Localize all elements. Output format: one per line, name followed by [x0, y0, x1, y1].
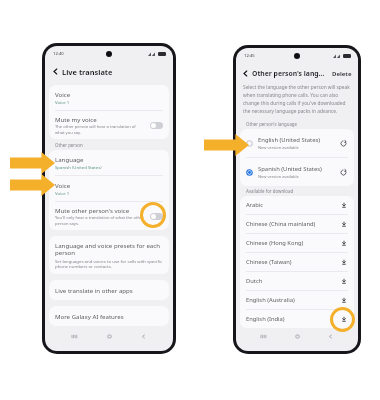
button[interactable]: Recents — [258, 331, 269, 342]
staticText: Spanish (United States) — [55, 164, 102, 170]
staticText: Spanish (United States) — [258, 165, 322, 173]
button[interactable]: Navigate up — [241, 69, 250, 78]
staticText: Dutch — [246, 277, 340, 285]
staticText: Other person — [55, 142, 83, 148]
button[interactable]: Chinese (Taiwan) — [240, 253, 354, 271]
staticText: Other person's lang… — [252, 69, 325, 78]
staticText: New version available — [258, 174, 299, 179]
button[interactable]: Dutch — [240, 272, 354, 290]
button[interactable]: Navigate up — [51, 67, 60, 76]
staticText: The other person will hear a translation… — [55, 124, 144, 135]
other: Update — [339, 168, 348, 177]
staticText: New version available — [258, 145, 299, 150]
other: Download — [340, 220, 348, 228]
button[interactable]: Back — [138, 331, 149, 342]
staticText: Available for download — [246, 188, 294, 194]
staticText: English (Australia) — [246, 296, 340, 304]
staticText: Language — [55, 155, 84, 163]
button[interactable]: Language — [49, 150, 169, 175]
other: Update — [339, 139, 348, 148]
staticText: English (United States) — [258, 136, 321, 144]
button[interactable]: English (India) — [240, 310, 354, 328]
other: Download — [340, 296, 348, 304]
button[interactable]: Mute my voice — [49, 111, 169, 139]
other: Download — [340, 277, 348, 285]
staticText: Mute my voice — [55, 115, 97, 123]
staticText: Voice — [55, 181, 71, 189]
button[interactable]: Home — [292, 331, 303, 342]
staticText: Live translate — [62, 67, 113, 77]
button[interactable]: Delete — [332, 70, 352, 78]
button[interactable]: Chinese (China mainland) — [240, 215, 354, 233]
button[interactable]: English (United States) — [240, 129, 354, 157]
staticText: Set languages and voices to use for call… — [55, 258, 163, 269]
staticText: English (India) — [246, 315, 340, 323]
staticText: Voice 1 — [55, 99, 70, 105]
button[interactable]: English (Australia) — [240, 291, 354, 309]
staticText: Delete — [332, 70, 352, 78]
button[interactable]: Language and voice presets for each pers… — [49, 236, 169, 274]
other: Download — [340, 239, 348, 247]
staticText: You'll only hear a translation of what t… — [55, 215, 144, 226]
staticText: Language and voice presets for each pers… — [55, 241, 163, 257]
staticText: Chinese (Taiwan) — [246, 258, 340, 266]
button[interactable]: Spanish (United States) — [240, 158, 354, 186]
staticText: 12:40 — [53, 51, 64, 57]
other: Download — [340, 315, 348, 323]
staticText: Voice 1 — [55, 190, 70, 196]
staticText: Select the language the other person wil… — [243, 84, 351, 115]
other: Download — [340, 258, 348, 266]
staticText: Arabic — [246, 201, 340, 209]
button[interactable]: Chinese (Hong Kong) — [240, 234, 354, 252]
button[interactable]: Arabic — [240, 196, 354, 214]
staticText: 12:45 — [244, 53, 255, 59]
staticText: Chinese (Hong Kong) — [246, 239, 340, 247]
staticText: Live translate in other apps — [55, 286, 133, 294]
other: Download — [340, 201, 348, 209]
button[interactable]: Voice — [49, 85, 169, 110]
staticText: Other person's language — [246, 121, 298, 127]
button[interactable]: More Galaxy AI features — [49, 306, 169, 326]
button[interactable]: Voice — [49, 176, 169, 201]
button[interactable]: Home — [104, 331, 115, 342]
staticText: More Galaxy AI features — [55, 312, 124, 320]
button[interactable]: Recents — [69, 331, 80, 342]
button[interactable]: Mute other person's voice — [49, 202, 169, 230]
staticText: Mute other person's voice — [55, 206, 130, 214]
staticText: Voice — [55, 90, 71, 98]
staticText: Chinese (China mainland) — [246, 220, 340, 228]
button[interactable]: Live translate in other apps — [49, 280, 169, 300]
button[interactable]: Back — [325, 331, 336, 342]
